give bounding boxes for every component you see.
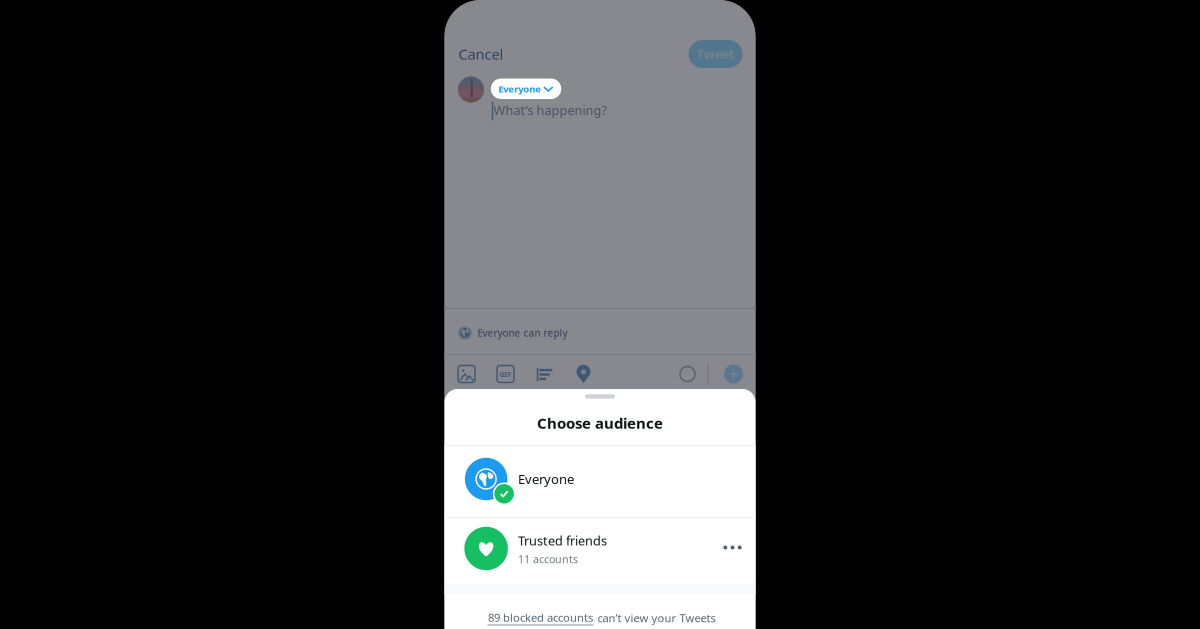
- button[interactable]: Add poll: [528, 358, 560, 390]
- button[interactable]: Add another Tweet: [718, 359, 748, 389]
- staticText: Everyone can reply: [477, 326, 567, 340]
- button[interactable]: 89 blocked accounts: [487, 609, 593, 626]
- button[interactable]: Add location: [567, 358, 599, 390]
- button[interactable]: Everyone: [491, 78, 561, 99]
- button[interactable]: Cancel: [452, 36, 509, 72]
- staticText: Tweet: [697, 46, 734, 62]
- staticText: Choose audience: [537, 413, 663, 433]
- staticText: 11 accounts: [518, 552, 578, 566]
- staticText: 89 blocked accounts: [488, 610, 593, 625]
- staticText: Trusted friends: [518, 532, 607, 549]
- staticText: What’s happening?: [493, 101, 606, 119]
- staticText: Cancel: [458, 44, 503, 64]
- button[interactable]: Tweet: [688, 40, 742, 68]
- button[interactable]: Add photo: [450, 358, 482, 390]
- staticText: Everyone: [518, 470, 574, 488]
- button[interactable]: Add GIF: [489, 358, 521, 390]
- staticText: GIF: [499, 369, 511, 379]
- staticText: can’t view your Tweets: [597, 610, 715, 626]
- button[interactable]: Everyone: [444, 446, 755, 518]
- staticText: Everyone: [498, 82, 541, 95]
- button[interactable]: Trusted friends: [444, 518, 755, 583]
